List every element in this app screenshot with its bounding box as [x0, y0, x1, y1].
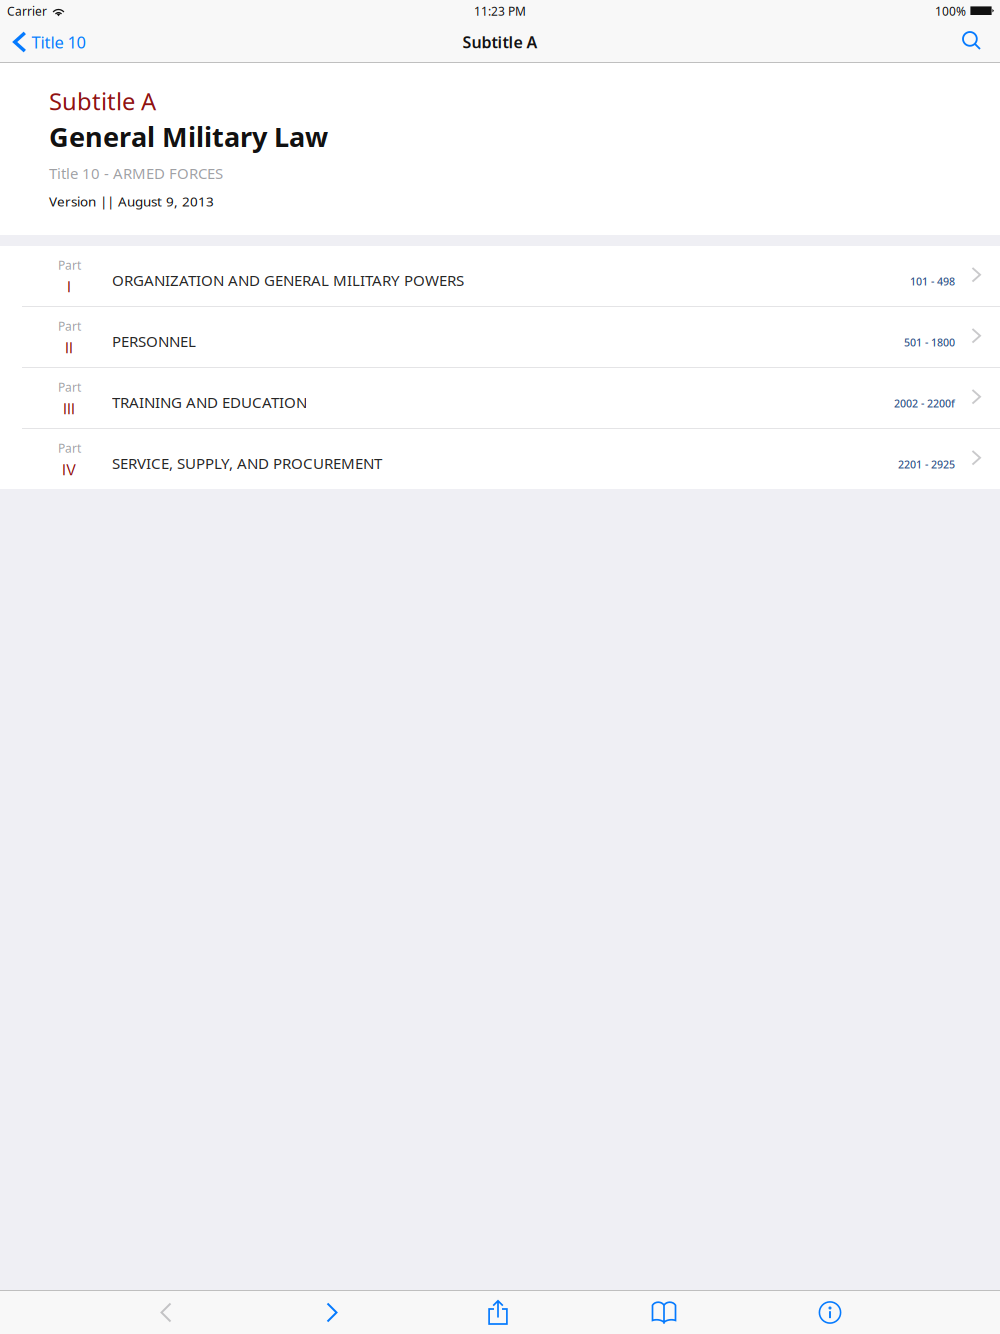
staticText: Part	[58, 379, 81, 395]
staticText: TRAINING AND EDUCATION	[112, 392, 307, 412]
staticText: Subtitle A	[49, 85, 156, 117]
button[interactable]: Search	[946, 22, 1000, 62]
staticText: 2002 - 2200f	[894, 396, 955, 410]
staticText: IV	[62, 461, 76, 479]
staticText: SERVICE, SUPPLY, AND PROCUREMENT	[112, 453, 382, 473]
button[interactable]: Info	[747, 1291, 913, 1334]
staticText: 100%	[935, 3, 966, 19]
staticText: General Military Law	[49, 118, 328, 155]
staticText: Title 10 - ARMED FORCES	[49, 163, 223, 183]
staticText: Part	[58, 318, 81, 334]
staticText: Part	[58, 257, 81, 273]
staticText: II	[65, 339, 73, 357]
staticText: Subtitle A	[462, 31, 537, 53]
button[interactable]: Part	[0, 246, 1000, 306]
button[interactable]: Back	[83, 1291, 249, 1334]
staticText: III	[63, 400, 75, 418]
staticText: I	[67, 278, 71, 296]
staticText: 2201 - 2925	[898, 457, 955, 471]
button[interactable]: Part	[0, 429, 1000, 489]
staticText: PERSONNEL	[112, 331, 196, 351]
staticText: Title 10	[31, 31, 85, 53]
staticText: 11:23 PM	[474, 3, 526, 19]
button[interactable]: Forward	[249, 1291, 415, 1334]
button[interactable]: Part	[0, 307, 1000, 367]
staticText: ORGANIZATION AND GENERAL MILITARY POWERS	[112, 270, 464, 290]
button[interactable]: Share	[415, 1291, 581, 1334]
button[interactable]: Bookmarks	[581, 1291, 747, 1334]
staticText: Part	[58, 440, 81, 456]
staticText: 501 - 1800	[904, 335, 955, 349]
staticText: Version || August 9, 2013	[49, 192, 214, 210]
button[interactable]: Title 10	[0, 22, 97, 62]
button[interactable]: Part	[0, 368, 1000, 428]
staticText: 101 - 498	[910, 274, 955, 288]
staticText: Carrier	[7, 3, 47, 19]
